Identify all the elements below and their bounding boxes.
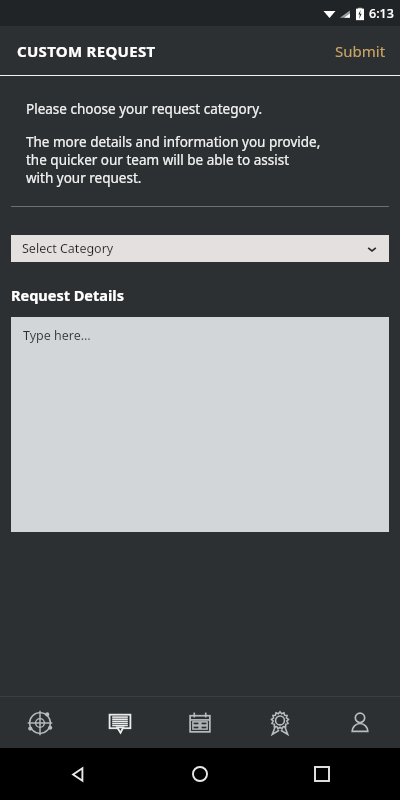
- staticText: 6:13: [369, 5, 394, 22]
- button[interactable]: Discover: [0, 697, 80, 748]
- button[interactable]: Submit: [321, 33, 400, 69]
- staticText: CUSTOM REQUEST: [17, 41, 156, 61]
- button[interactable]: Recents: [304, 756, 340, 792]
- button[interactable]: Type here…: [11, 317, 389, 532]
- button[interactable]: Select Category: [11, 235, 389, 262]
- button[interactable]: Rewards: [240, 697, 320, 748]
- button[interactable]: Back: [60, 756, 96, 792]
- staticText: Please choose your request category.: [26, 100, 263, 118]
- staticText: Type here…: [23, 327, 91, 344]
- button[interactable]: Home: [182, 756, 218, 792]
- staticText: Request Details: [11, 285, 124, 305]
- button[interactable]: Messages: [80, 697, 160, 748]
- staticText: Select Category: [22, 240, 114, 257]
- staticText: The more details and information you pro…: [26, 133, 321, 187]
- button[interactable]: Calendar: [160, 697, 240, 748]
- staticText: Submit: [335, 41, 386, 61]
- button[interactable]: Profile: [320, 697, 400, 748]
